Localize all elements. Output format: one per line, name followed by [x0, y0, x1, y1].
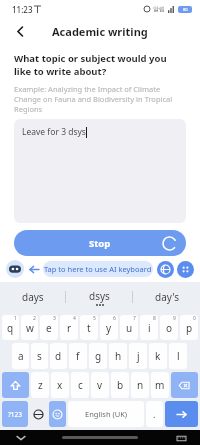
- button[interactable]: English (UK): [68, 401, 144, 427]
- staticText: Academic writing: [52, 24, 148, 39]
- button[interactable]: Hide keyboard: [14, 431, 28, 445]
- staticText: What topic or subject would you like to …: [14, 52, 186, 78]
- button[interactable]: Back: [10, 21, 30, 41]
- button[interactable]: dsys: [66, 282, 133, 312]
- staticText: Tap to here to use AI keyboard: [44, 264, 152, 274]
- staticText: w: [26, 321, 34, 335]
- button[interactable]: v: [91, 372, 109, 398]
- staticText: 0: [193, 315, 196, 322]
- staticText: 9: [173, 315, 176, 322]
- button[interactable]: Enter: [165, 401, 198, 427]
- staticText: s: [37, 349, 42, 363]
- button[interactable]: Sticker: [49, 401, 66, 427]
- staticText: dsys: [89, 289, 110, 303]
- button[interactable]: Stop: [14, 230, 186, 256]
- button[interactable]: Emoji: [30, 401, 47, 427]
- button[interactable]: a: [12, 343, 29, 369]
- button[interactable]: y: [100, 315, 118, 340]
- staticText: i: [148, 321, 151, 335]
- staticText: p: [186, 321, 193, 335]
- button[interactable]: .: [146, 401, 163, 427]
- button[interactable]: d: [50, 343, 67, 369]
- staticText: f: [76, 349, 80, 363]
- staticText: 6: [113, 315, 116, 322]
- button[interactable]: o: [160, 315, 178, 340]
- button[interactable]: Back: [27, 262, 41, 276]
- staticText: 80: [183, 7, 188, 12]
- button[interactable]: c: [71, 372, 89, 398]
- button[interactable]: b: [111, 372, 129, 398]
- staticText: d: [55, 349, 62, 363]
- staticText: 2: [33, 315, 36, 322]
- button[interactable]: u: [120, 315, 138, 340]
- button[interactable]: e: [40, 315, 58, 340]
- button[interactable]: t: [80, 315, 98, 340]
- staticText: Leave for 3 dsys: [22, 126, 86, 138]
- button[interactable]: g: [89, 343, 107, 369]
- button[interactable]: AI assistant: [6, 260, 24, 278]
- staticText: q: [7, 321, 14, 335]
- staticText: z: [38, 378, 43, 392]
- button[interactable]: ?123: [2, 401, 28, 427]
- button[interactable]: r: [60, 315, 78, 340]
- staticText: t: [87, 321, 91, 335]
- button[interactable]: Shift: [2, 372, 29, 398]
- button[interactable]: k: [149, 343, 167, 369]
- button[interactable]: f: [69, 343, 87, 369]
- staticText: 7: [133, 315, 136, 322]
- button[interactable]: Backspace: [171, 372, 198, 398]
- staticText: Example: Analyzing the Impact of Climate…: [14, 84, 186, 114]
- staticText: 1: [14, 315, 17, 322]
- button[interactable]: z: [31, 372, 49, 398]
- staticText: l: [177, 349, 180, 363]
- button[interactable]: q: [2, 315, 19, 340]
- staticText: 5: [93, 315, 96, 322]
- staticText: x: [57, 378, 63, 392]
- staticText: n: [137, 378, 144, 392]
- button[interactable]: p: [180, 315, 198, 340]
- staticText: days: [22, 290, 44, 304]
- button[interactable]: h: [109, 343, 127, 369]
- staticText: o: [166, 321, 173, 335]
- staticText: v: [97, 378, 103, 392]
- staticText: m: [155, 378, 165, 392]
- staticText: k: [155, 349, 161, 363]
- button[interactable]: Language: [157, 261, 174, 278]
- button[interactable]: s: [31, 343, 48, 369]
- button[interactable]: days: [0, 282, 66, 312]
- staticText: 알림: [153, 5, 165, 13]
- staticText: e: [46, 321, 52, 335]
- staticText: h: [115, 349, 122, 363]
- button[interactable]: Tap to here to use AI keyboard: [43, 261, 153, 277]
- staticText: 3: [53, 315, 56, 322]
- staticText: Stop: [89, 237, 111, 250]
- button[interactable]: Leave for 3 dsys: [14, 119, 186, 223]
- button[interactable]: More options: [177, 261, 194, 278]
- button[interactable]: x: [51, 372, 69, 398]
- staticText: ?123: [8, 410, 22, 419]
- button[interactable]: n: [131, 372, 149, 398]
- staticText: c: [78, 378, 83, 392]
- button[interactable]: w: [21, 315, 38, 340]
- staticText: y: [106, 321, 112, 335]
- staticText: r: [67, 321, 72, 335]
- staticText: j: [137, 349, 140, 363]
- button[interactable]: j: [129, 343, 147, 369]
- staticText: English (UK): [85, 409, 128, 419]
- button[interactable]: m: [151, 372, 169, 398]
- staticText: u: [126, 321, 133, 335]
- button[interactable]: l: [169, 343, 187, 369]
- staticText: 4: [73, 315, 76, 322]
- staticText: g: [95, 349, 102, 363]
- staticText: .: [153, 408, 156, 420]
- button[interactable]: day's: [133, 282, 200, 312]
- button[interactable]: i: [140, 315, 158, 340]
- staticText: a: [18, 349, 24, 363]
- staticText: b: [117, 378, 124, 392]
- staticText: day's: [155, 290, 179, 304]
- staticText: 11:23: [12, 4, 33, 15]
- staticText: 8: [153, 315, 156, 322]
- button[interactable]: Switch keyboard: [174, 431, 188, 445]
